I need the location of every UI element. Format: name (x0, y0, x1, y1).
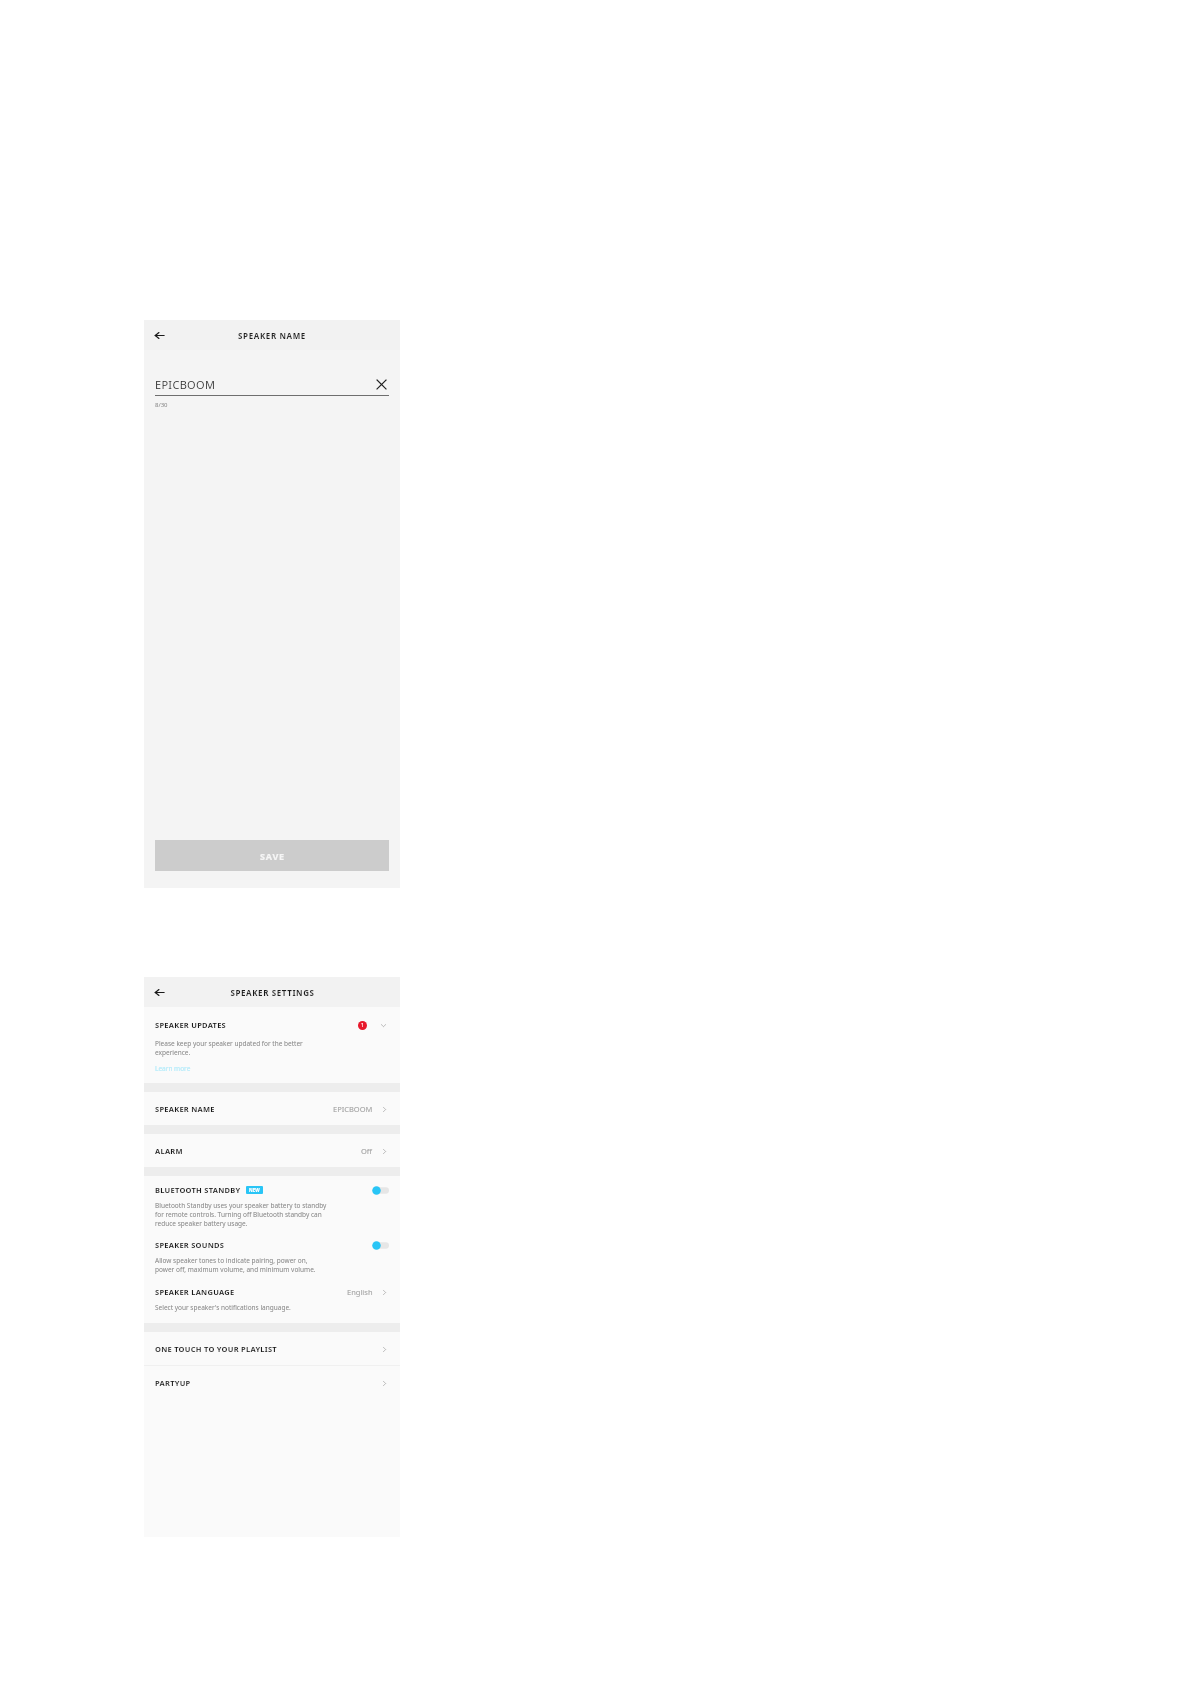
staticText: Off (361, 1146, 373, 1156)
button[interactable]: Back (150, 983, 168, 1001)
button[interactable]: ALARM (144, 1134, 400, 1167)
button[interactable]: SPEAKER LANGUAGE (144, 1287, 400, 1323)
button[interactable]: SPEAKER NAME (144, 1092, 400, 1125)
button[interactable]: ONE TOUCH TO YOUR PLAYLIST (144, 1332, 400, 1365)
staticText: SAVE (260, 850, 285, 862)
staticText: ALARM (155, 1146, 361, 1156)
staticText: ONE TOUCH TO YOUR PLAYLIST (155, 1344, 379, 1354)
staticText: Allow speaker tones to indicate pairing,… (155, 1256, 316, 1274)
staticText: SPEAKER NAME (238, 330, 306, 341)
button[interactable]: Learn more (155, 1064, 191, 1073)
staticText: 8/30 (155, 401, 168, 409)
staticText: Bluetooth Standby uses your speaker batt… (155, 1201, 327, 1228)
staticText: Select your speaker's notifications lang… (155, 1303, 291, 1312)
button[interactable]: Clear text (373, 376, 389, 392)
staticText: SPEAKER UPDATES (155, 1020, 358, 1030)
staticText: SPEAKER SOUNDS (155, 1240, 372, 1250)
other: Expand (377, 1019, 389, 1031)
staticText: English (347, 1287, 373, 1297)
staticText: EPICBOOM (155, 377, 373, 392)
staticText: EPICBOOM (333, 1104, 373, 1114)
button[interactable]: Toggle (372, 1186, 389, 1195)
button[interactable]: SPEAKER UPDATES (144, 1017, 400, 1033)
staticText: SPEAKER LANGUAGE (155, 1287, 347, 1297)
button[interactable]: Toggle (372, 1241, 389, 1250)
button[interactable]: PARTYUP (144, 1366, 400, 1399)
staticText: BLUETOOTH STANDBY (155, 1185, 241, 1195)
staticText: 1 (361, 1022, 364, 1029)
staticText: SPEAKER SETTINGS (230, 987, 315, 998)
button[interactable]: Back (150, 326, 168, 344)
staticText: SPEAKER NAME (155, 1104, 333, 1114)
staticText: Please keep your speaker updated for the… (155, 1039, 303, 1057)
staticText: PARTYUP (155, 1378, 379, 1388)
staticText: NEW (249, 1187, 260, 1193)
button[interactable]: SAVE (155, 840, 389, 871)
